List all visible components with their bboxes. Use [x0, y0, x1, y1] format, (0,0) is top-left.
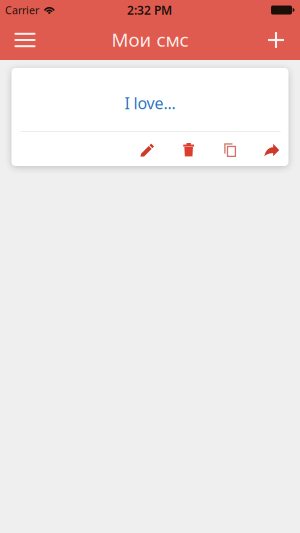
button[interactable]: I love...	[11, 68, 288, 130]
button[interactable]: New message	[253, 20, 299, 60]
button[interactable]: Edit	[126, 133, 168, 167]
staticText: Мои смс	[111, 27, 188, 52]
staticText: I love...	[124, 92, 175, 114]
button[interactable]: Share	[251, 133, 292, 167]
button[interactable]: Menu	[2, 20, 48, 60]
button[interactable]: Copy	[209, 133, 251, 167]
staticText: Carrier	[5, 3, 39, 17]
staticText: 2:32 PM	[127, 2, 172, 18]
button[interactable]: Delete	[168, 133, 209, 167]
